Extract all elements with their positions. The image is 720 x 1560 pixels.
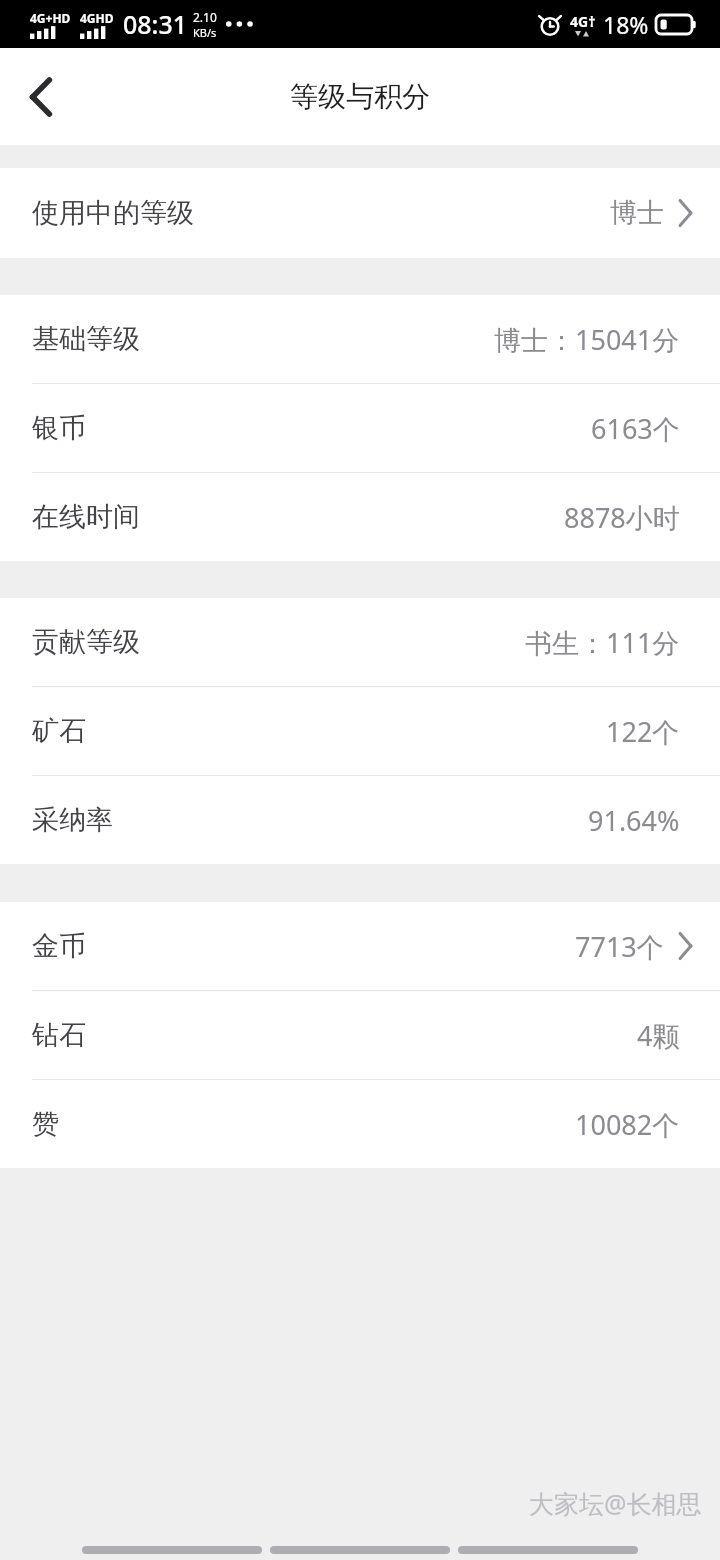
staticText: 4GHD: [80, 10, 114, 26]
button[interactable]: Navigation indicator: [82, 1546, 262, 1554]
button[interactable]: Navigation indicator: [270, 1546, 450, 1554]
button[interactable]: 采纳率: [0, 776, 720, 864]
staticText: 122个: [606, 713, 680, 750]
button[interactable]: 金币: [0, 902, 720, 990]
staticText: 7713个: [575, 928, 664, 965]
staticText: 博士: [610, 196, 664, 230]
button[interactable]: 使用中的等级: [0, 168, 720, 258]
staticText: 10082个: [575, 1106, 680, 1143]
staticText: 8878小时: [564, 499, 680, 536]
button[interactable]: Back: [12, 68, 70, 126]
button[interactable]: 贡献等级: [0, 598, 720, 686]
staticText: 贡献等级: [32, 625, 140, 659]
staticText: 18%: [603, 9, 649, 40]
staticText: 博士：15041分: [494, 321, 680, 358]
button[interactable]: 钻石: [0, 991, 720, 1079]
staticText: 银币: [32, 411, 86, 445]
staticText: 等级与积分: [290, 79, 430, 114]
staticText: 采纳率: [32, 803, 113, 837]
staticText: 使用中的等级: [32, 196, 194, 230]
button[interactable]: 银币: [0, 384, 720, 472]
button[interactable]: 在线时间: [0, 473, 720, 561]
staticText: 6163个: [591, 410, 680, 447]
button[interactable]: Navigation indicator: [458, 1546, 638, 1554]
staticText: KB/s: [193, 25, 217, 40]
staticText: 钻石: [32, 1018, 86, 1052]
staticText: 基础等级: [32, 322, 140, 356]
staticText: 4G+HD: [30, 10, 71, 26]
staticText: 大家坛@长相思: [529, 1486, 702, 1520]
button[interactable]: 赞: [0, 1080, 720, 1168]
staticText: 赞: [32, 1107, 59, 1141]
staticText: 矿石: [32, 714, 86, 748]
staticText: 金币: [32, 929, 86, 963]
staticText: 在线时间: [32, 500, 140, 534]
staticText: 书生：111分: [525, 624, 680, 661]
staticText: 08:31: [123, 7, 188, 41]
button[interactable]: 矿石: [0, 687, 720, 775]
staticText: 91.64%: [588, 802, 680, 839]
staticText: 4颗: [637, 1017, 680, 1054]
staticText: 2.10: [193, 9, 217, 25]
staticText: 4G†: [570, 12, 596, 31]
button[interactable]: 基础等级: [0, 295, 720, 383]
